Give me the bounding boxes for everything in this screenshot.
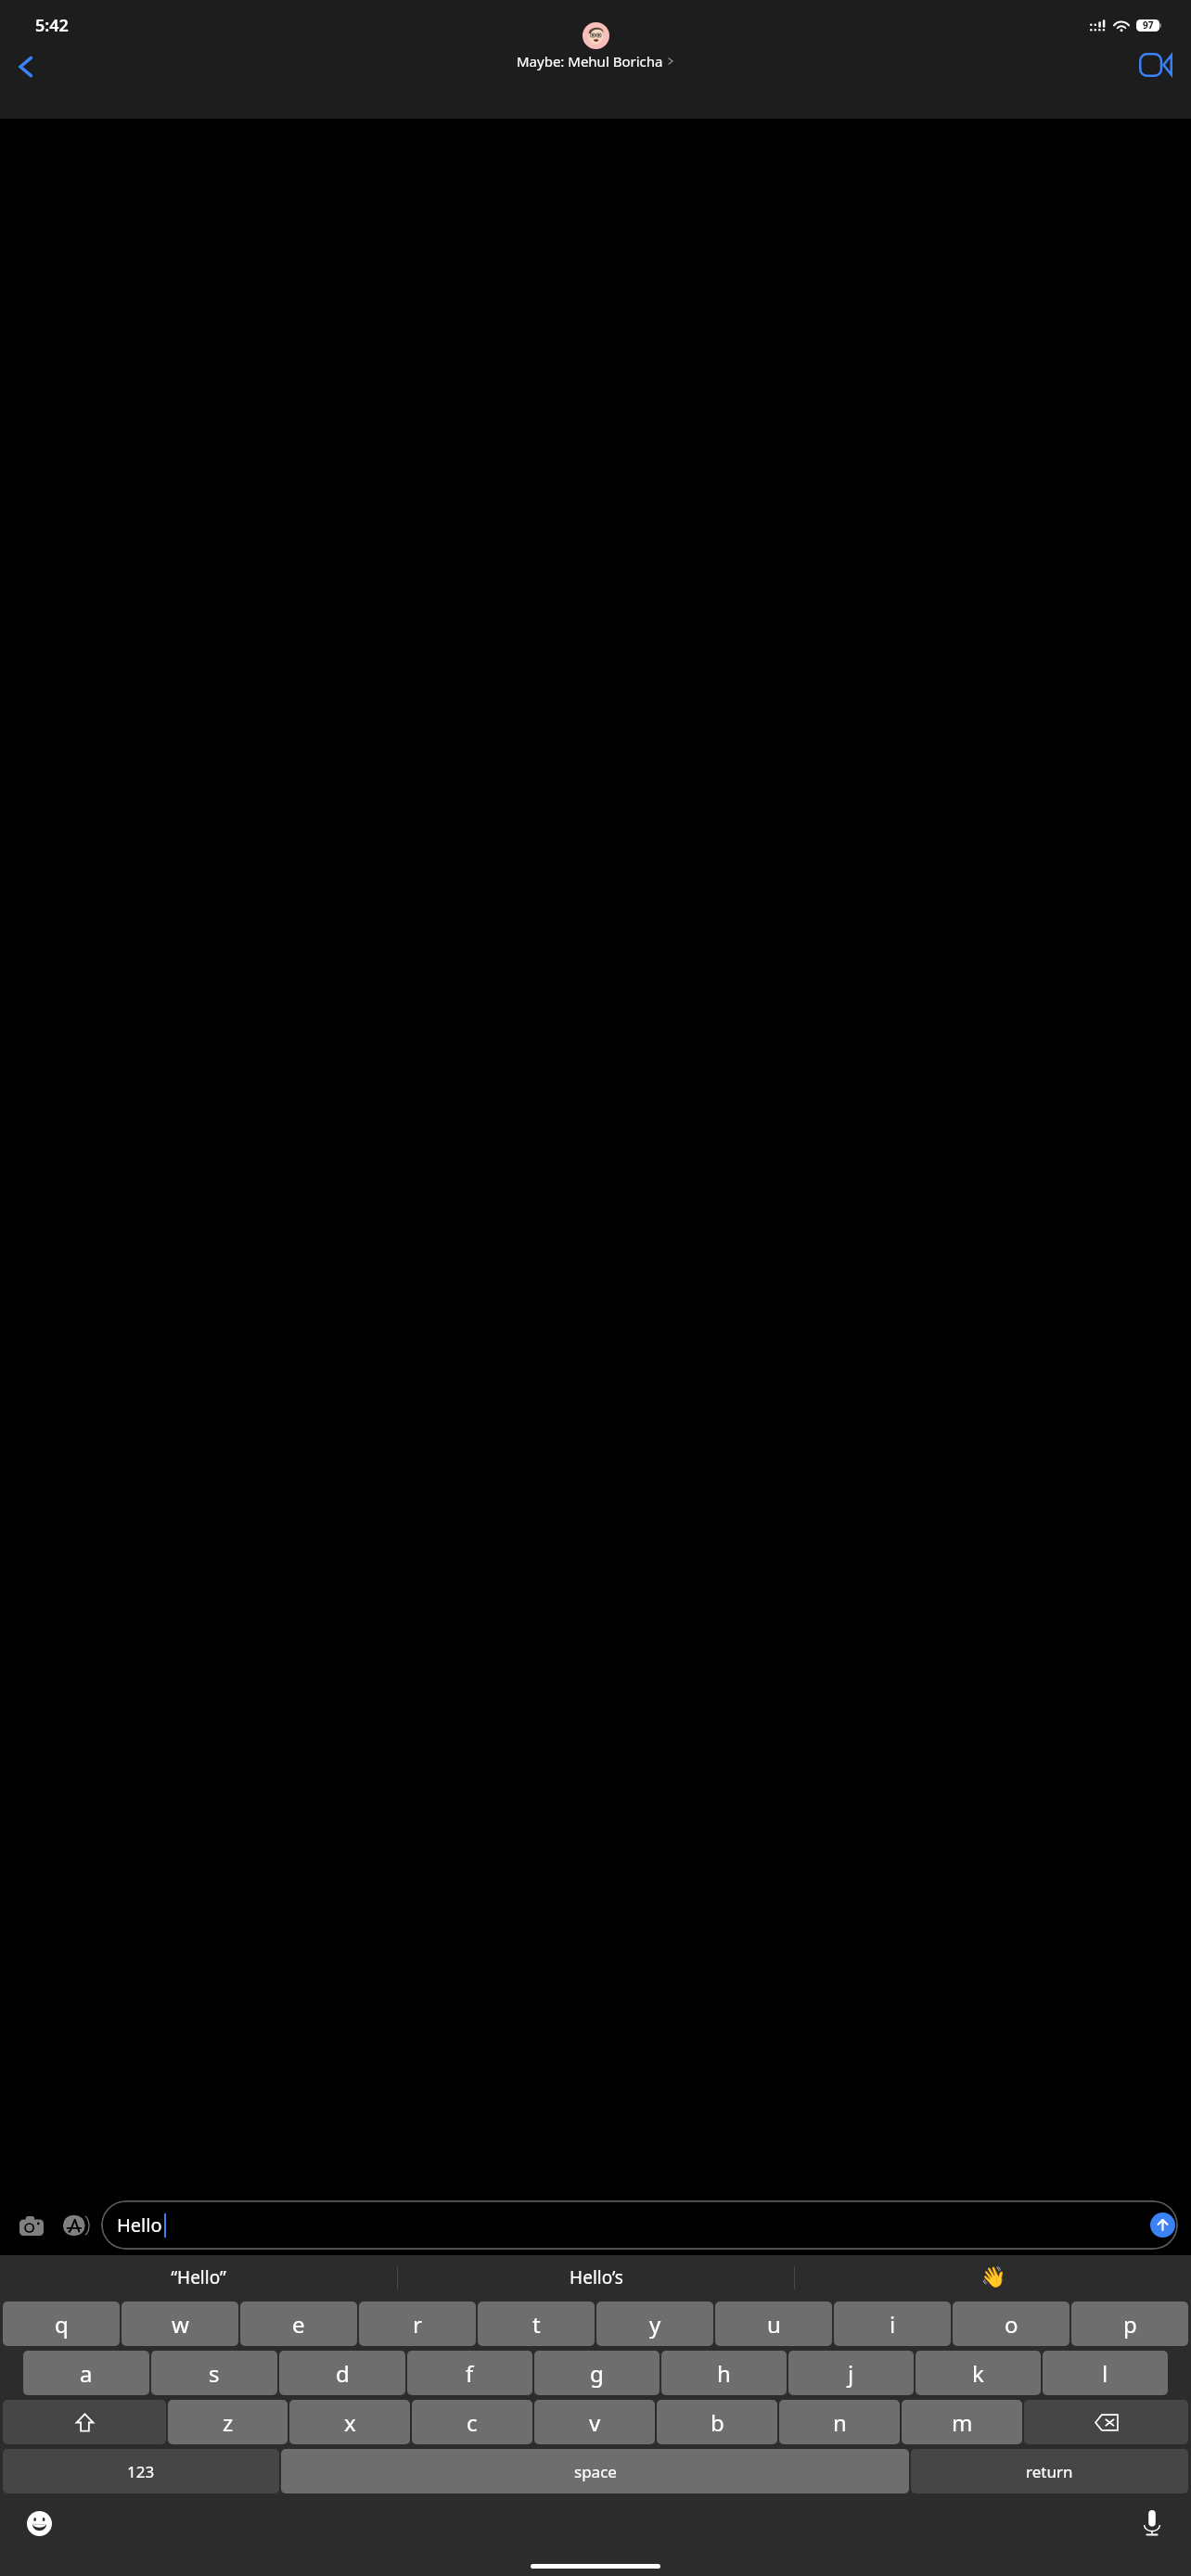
staticText: “Hello” (171, 2265, 226, 2289)
staticText: y (649, 2309, 661, 2340)
button[interactable]: v (534, 2400, 655, 2444)
staticText: q (55, 2309, 69, 2340)
button[interactable]: space (281, 2449, 909, 2493)
button[interactable]: x (289, 2400, 410, 2444)
button[interactable]: k (916, 2351, 1041, 2395)
button[interactable]: i (834, 2302, 951, 2346)
staticText: p (1123, 2309, 1137, 2340)
button[interactable]: h (661, 2351, 787, 2395)
staticText: e (292, 2309, 305, 2340)
staticText: 97 (1143, 19, 1154, 32)
button[interactable]: Camera (11, 2205, 52, 2246)
button[interactable]: FaceTime video call (1133, 43, 1178, 87)
button[interactable]: t (478, 2302, 595, 2346)
staticText: k (972, 2358, 984, 2389)
staticText: d (336, 2358, 350, 2389)
staticText: Hello’s (570, 2265, 623, 2289)
button[interactable]: e (240, 2302, 357, 2346)
staticText: u (767, 2309, 781, 2340)
staticText: o (1005, 2309, 1018, 2340)
button[interactable]: j (788, 2351, 914, 2395)
staticText: space (574, 2461, 617, 2482)
staticText: g (590, 2358, 604, 2389)
button[interactable]: Backspace (1024, 2400, 1188, 2444)
button[interactable]: b (657, 2400, 777, 2444)
staticText: Hello (117, 2213, 162, 2238)
button[interactable]: Maybe: Mehul Boricha (517, 22, 675, 70)
button[interactable]: 123 (3, 2449, 279, 2493)
staticText: b (711, 2407, 724, 2438)
staticText: i (890, 2309, 896, 2340)
button[interactable]: Hello’s (398, 2255, 794, 2300)
button[interactable]: s (151, 2351, 277, 2395)
staticText: t (532, 2309, 541, 2340)
button[interactable]: z (168, 2400, 288, 2444)
button[interactable]: y (596, 2302, 713, 2346)
button[interactable]: “Hello” (0, 2255, 397, 2300)
button[interactable]: 👋 (795, 2255, 1191, 2300)
staticText: a (80, 2358, 93, 2389)
button[interactable]: o (953, 2302, 1069, 2346)
button[interactable]: Dictation (1130, 2501, 1174, 2545)
button[interactable]: r (359, 2302, 476, 2346)
button[interactable]: Emoji keyboard (17, 2501, 61, 2545)
staticText: 5:42 (35, 14, 69, 37)
button[interactable]: g (534, 2351, 660, 2395)
button[interactable]: w (122, 2302, 238, 2346)
button[interactable]: Shift (3, 2400, 166, 2444)
button[interactable]: Back (6, 46, 46, 87)
button[interactable]: m (902, 2400, 1022, 2444)
staticText: j (848, 2358, 854, 2389)
button[interactable]: c (412, 2400, 532, 2444)
staticText: w (172, 2309, 189, 2340)
staticText: Maybe: Mehul Boricha (517, 52, 663, 70)
staticText: h (717, 2358, 731, 2389)
button[interactable]: a (23, 2351, 149, 2395)
staticText: m (952, 2407, 973, 2438)
button[interactable]: n (779, 2400, 900, 2444)
button[interactable]: Send (1150, 2213, 1175, 2238)
button[interactable]: return (911, 2449, 1188, 2493)
staticText: x (344, 2407, 356, 2438)
staticText: l (1102, 2358, 1108, 2389)
staticText: s (209, 2358, 220, 2389)
staticText: f (466, 2358, 474, 2389)
staticText: 123 (127, 2461, 155, 2482)
staticText: c (467, 2407, 478, 2438)
button[interactable]: f (407, 2351, 532, 2395)
button[interactable]: p (1071, 2302, 1188, 2346)
button[interactable]: d (279, 2351, 405, 2395)
staticText: v (589, 2407, 601, 2438)
staticText: r (413, 2309, 422, 2340)
button[interactable]: Hello (101, 2200, 1178, 2250)
staticText: z (223, 2407, 234, 2438)
button[interactable]: u (715, 2302, 832, 2346)
button[interactable]: l (1043, 2351, 1168, 2395)
staticText: n (833, 2407, 847, 2438)
button[interactable]: q (3, 2302, 120, 2346)
staticText: return (1026, 2461, 1073, 2482)
staticText: 👋 (980, 2265, 1006, 2289)
button[interactable]: Apps (56, 2205, 96, 2246)
